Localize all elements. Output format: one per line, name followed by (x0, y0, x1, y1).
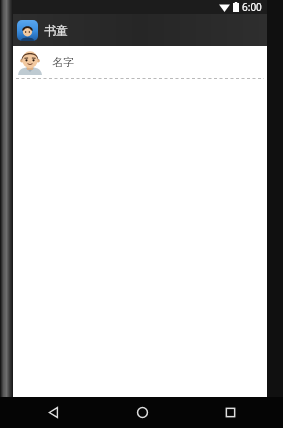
other: App icon (17, 20, 38, 41)
staticText: 6:00 (242, 0, 262, 14)
staticText: 书童 (44, 23, 68, 38)
button[interactable]: App icon (13, 14, 267, 46)
button[interactable]: Back (18, 397, 88, 428)
button[interactable]: Home (107, 397, 177, 428)
button[interactable]: 名字 (13, 46, 267, 79)
staticText: 名字 (52, 55, 74, 69)
button[interactable]: Recent apps (195, 397, 265, 428)
